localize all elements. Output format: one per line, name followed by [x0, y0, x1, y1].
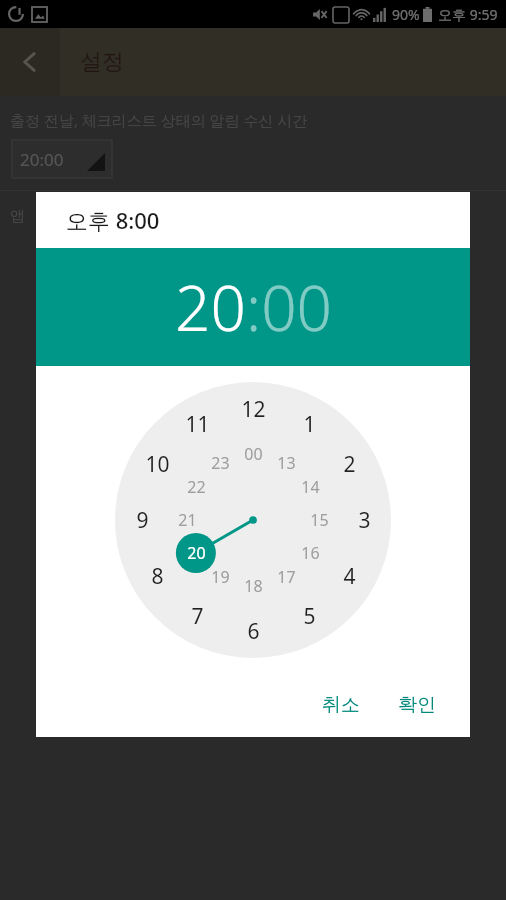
staticText: 21 — [178, 509, 197, 531]
button[interactable]: 20 — [175, 265, 246, 349]
staticText: 22 — [187, 476, 206, 498]
staticText: 7 — [191, 602, 204, 631]
staticText: 2 — [343, 450, 356, 479]
button[interactable]: 확인 — [390, 687, 444, 723]
staticText: 20:00 — [20, 148, 64, 171]
staticText: 12 — [241, 395, 266, 424]
staticText: 9 — [136, 506, 149, 535]
staticText: 오후 8:00 — [66, 205, 160, 235]
staticText: 4 — [343, 562, 356, 591]
staticText: 14 — [301, 476, 320, 498]
staticText: 5 — [303, 602, 316, 631]
staticText: 18 — [244, 575, 263, 597]
staticText: 취소 — [322, 693, 360, 717]
button[interactable]: 취소 — [314, 687, 368, 723]
staticText: 17 — [277, 566, 296, 588]
staticText: 3 — [358, 506, 371, 535]
staticText: 23 — [211, 452, 230, 474]
staticText: 6 — [247, 617, 260, 646]
staticText: 00 — [244, 443, 263, 465]
staticText: 15 — [310, 509, 329, 531]
staticText: 오후 9:59 — [438, 5, 498, 24]
staticText: 19 — [211, 566, 230, 588]
staticText: 설정 — [80, 48, 124, 76]
staticText: 출정 전날, 체크리스트 상태의 알림 수신 시간 — [10, 110, 308, 130]
button[interactable]: 20:00 — [12, 140, 112, 178]
staticText: 20 — [187, 542, 206, 564]
staticText: 확인 — [398, 693, 436, 717]
staticText: 90% — [392, 5, 420, 24]
staticText: 16 — [301, 542, 320, 564]
staticText: 11 — [185, 410, 210, 439]
staticText: 앱 — [10, 205, 29, 225]
button[interactable] — [115, 382, 391, 658]
staticText: 13 — [277, 452, 296, 474]
staticText: 1 — [303, 410, 316, 439]
staticText: 10 — [145, 450, 170, 479]
button[interactable]: :00 — [246, 265, 332, 349]
staticText: 8 — [151, 562, 164, 591]
button[interactable]: Back — [0, 28, 60, 96]
